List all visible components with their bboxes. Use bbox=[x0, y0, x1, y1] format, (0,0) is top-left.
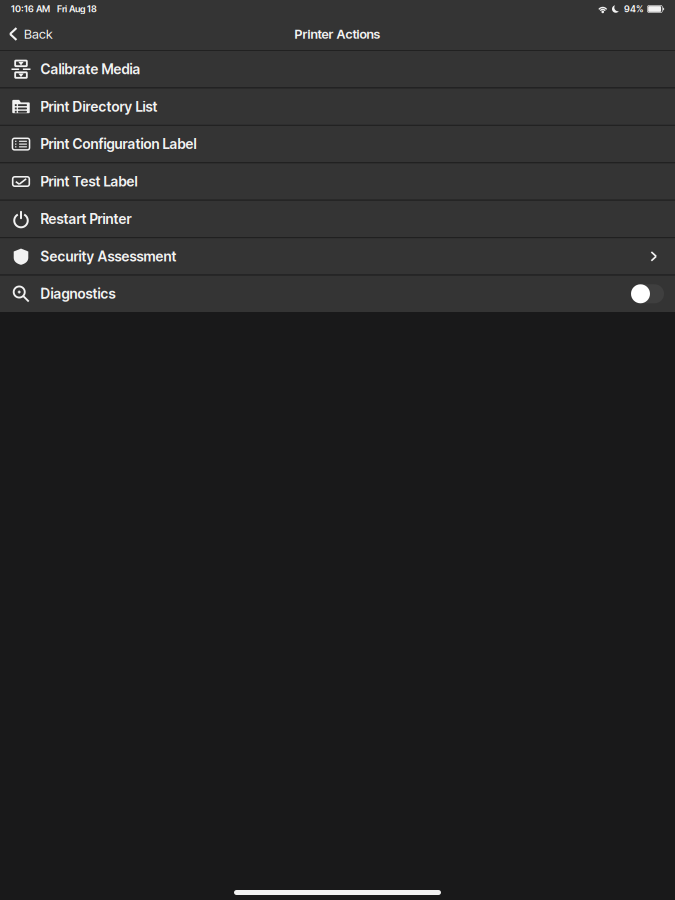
staticText: Print Configuration Label bbox=[40, 136, 196, 152]
button[interactable]: Diagnostics toggle bbox=[631, 284, 664, 303]
button[interactable]: Print Test Label bbox=[0, 163, 675, 200]
staticText: 94% bbox=[624, 3, 644, 14]
staticText: 10:16 AM bbox=[11, 3, 50, 14]
button[interactable]: Print Directory List bbox=[0, 88, 675, 125]
button[interactable]: Print Configuration Label bbox=[0, 126, 675, 162]
staticText: Print Test Label bbox=[40, 173, 137, 190]
staticText: Restart Printer bbox=[40, 210, 131, 227]
staticText: Back bbox=[24, 26, 53, 42]
button[interactable]: Diagnostics bbox=[0, 276, 675, 312]
button[interactable]: Security Assessment bbox=[0, 238, 675, 274]
staticText: Security Assessment bbox=[40, 248, 176, 265]
staticText: Fri Aug 18 bbox=[57, 3, 97, 14]
staticText: Printer Actions bbox=[294, 26, 380, 42]
staticText: Diagnostics bbox=[40, 285, 115, 302]
staticText: Print Directory List bbox=[40, 98, 157, 115]
staticText: Calibrate Media bbox=[40, 61, 140, 78]
button[interactable]: Back bbox=[0, 18, 63, 49]
button[interactable]: Calibrate Media bbox=[0, 51, 675, 87]
button[interactable]: Restart Printer bbox=[0, 201, 675, 237]
